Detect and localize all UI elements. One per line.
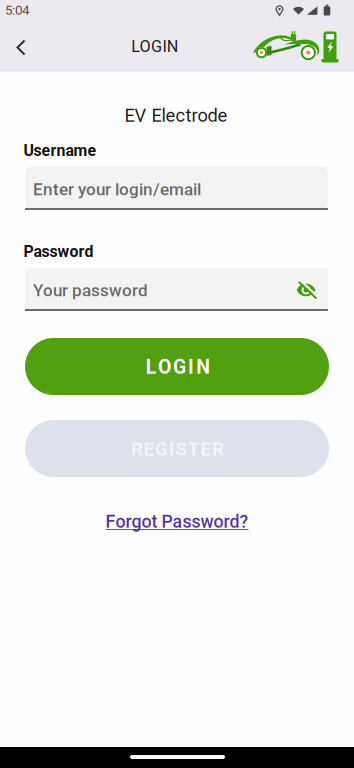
staticText: REGISTER — [131, 438, 224, 460]
staticText: Password — [23, 242, 93, 261]
staticText: Your password — [33, 280, 148, 300]
staticText: LOGIN — [146, 356, 210, 378]
staticText: LOGIN — [131, 37, 179, 56]
staticText: Username — [23, 141, 96, 160]
staticText: 5:04 — [5, 2, 29, 18]
staticText: EV Electrode — [124, 105, 227, 126]
staticText: Enter your login/email — [33, 179, 201, 199]
staticText: Forgot Password? — [105, 511, 248, 532]
